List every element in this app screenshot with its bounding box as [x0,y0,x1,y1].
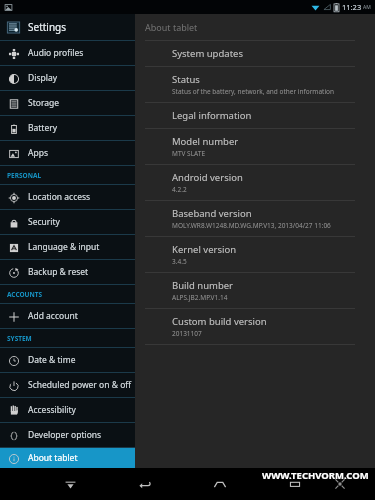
staticText: About tablet [28,452,78,464]
button[interactable]: Audio profiles [0,41,135,65]
staticText: Scheduled power on & off [28,379,132,391]
staticText: Baseband version [172,207,252,220]
staticText: Android version [172,171,243,184]
staticText: Settings [28,20,67,34]
staticText: SYSTEM [7,334,32,343]
staticText: 3.4.5 [172,257,187,266]
staticText: Developer options [28,429,102,441]
button[interactable]: Accessibility [0,398,135,422]
staticText: Legal information [172,109,252,122]
staticText: Language & input [28,241,100,253]
staticText: Apps [28,147,48,159]
button[interactable]: Display [0,66,135,90]
button[interactable]: Apps [0,141,135,165]
staticText: MTV SLATE [172,149,206,158]
staticText: Location access [28,191,91,203]
button[interactable]: Battery [0,116,135,140]
staticText: About tablet [145,21,198,33]
button[interactable]: Legal information [135,103,375,128]
staticText: ALPS.JB2.MP.V1.14 [172,293,228,302]
button[interactable]: Date & time [0,348,135,372]
button[interactable]: Model number [135,129,375,164]
staticText: 4.2.2 [172,185,187,194]
button[interactable]: Status [135,67,375,102]
button[interactable]: Developer options [0,423,135,447]
staticText: MOLY.WR8.W1248.MD.WG.MP.V13, 2013/04/27 … [172,221,331,230]
staticText: System updates [172,47,243,60]
staticText: PERSONAL [7,171,42,180]
staticText: WWW.TECHVORM.COM [262,469,369,482]
other: Settings [6,20,21,35]
staticText: Model number [172,135,239,148]
button[interactable]: Custom build version [135,309,375,344]
staticText: Custom build version [172,315,267,328]
button[interactable]: Screenshot [327,471,353,497]
staticText: Security [28,216,60,228]
staticText: AM [363,4,371,11]
staticText: Display [28,72,57,84]
button[interactable]: Add account [0,304,135,328]
staticText: Status [172,73,200,86]
staticText: Audio profiles [28,47,84,59]
button[interactable]: Location access [0,185,135,209]
staticText: Battery [28,122,58,134]
button[interactable]: Baseband version [135,201,375,236]
staticText: Backup & reset [28,266,89,278]
staticText: Add account [28,310,78,322]
staticText: 11:23 [342,2,362,12]
button[interactable]: Storage [0,91,135,115]
button[interactable]: Scheduled power on & off [0,373,135,397]
staticText: Kernel version [172,243,237,256]
staticText: Storage [28,97,60,109]
button[interactable]: Android version [135,165,375,200]
staticText: Accessibility [28,404,76,416]
staticText: 20131107 [172,329,202,338]
button[interactable]: About tablet [0,448,135,468]
button[interactable]: Backup & reset [0,260,135,284]
button[interactable]: Build number [135,273,375,308]
staticText: Build number [172,279,234,292]
button[interactable]: Back [130,469,160,499]
button[interactable]: Kernel version [135,237,375,272]
staticText: Status of the battery, network, and othe… [172,87,335,96]
staticText: Date & time [28,354,76,366]
button[interactable]: Home [205,469,235,499]
button[interactable]: Hide [55,469,85,499]
button[interactable]: Settings [0,14,135,40]
button[interactable]: System updates [135,41,375,66]
button[interactable]: Recent apps [280,469,310,499]
button[interactable]: Security [0,210,135,234]
button[interactable]: Language & input [0,235,135,259]
staticText: ACCOUNTS [7,290,43,299]
